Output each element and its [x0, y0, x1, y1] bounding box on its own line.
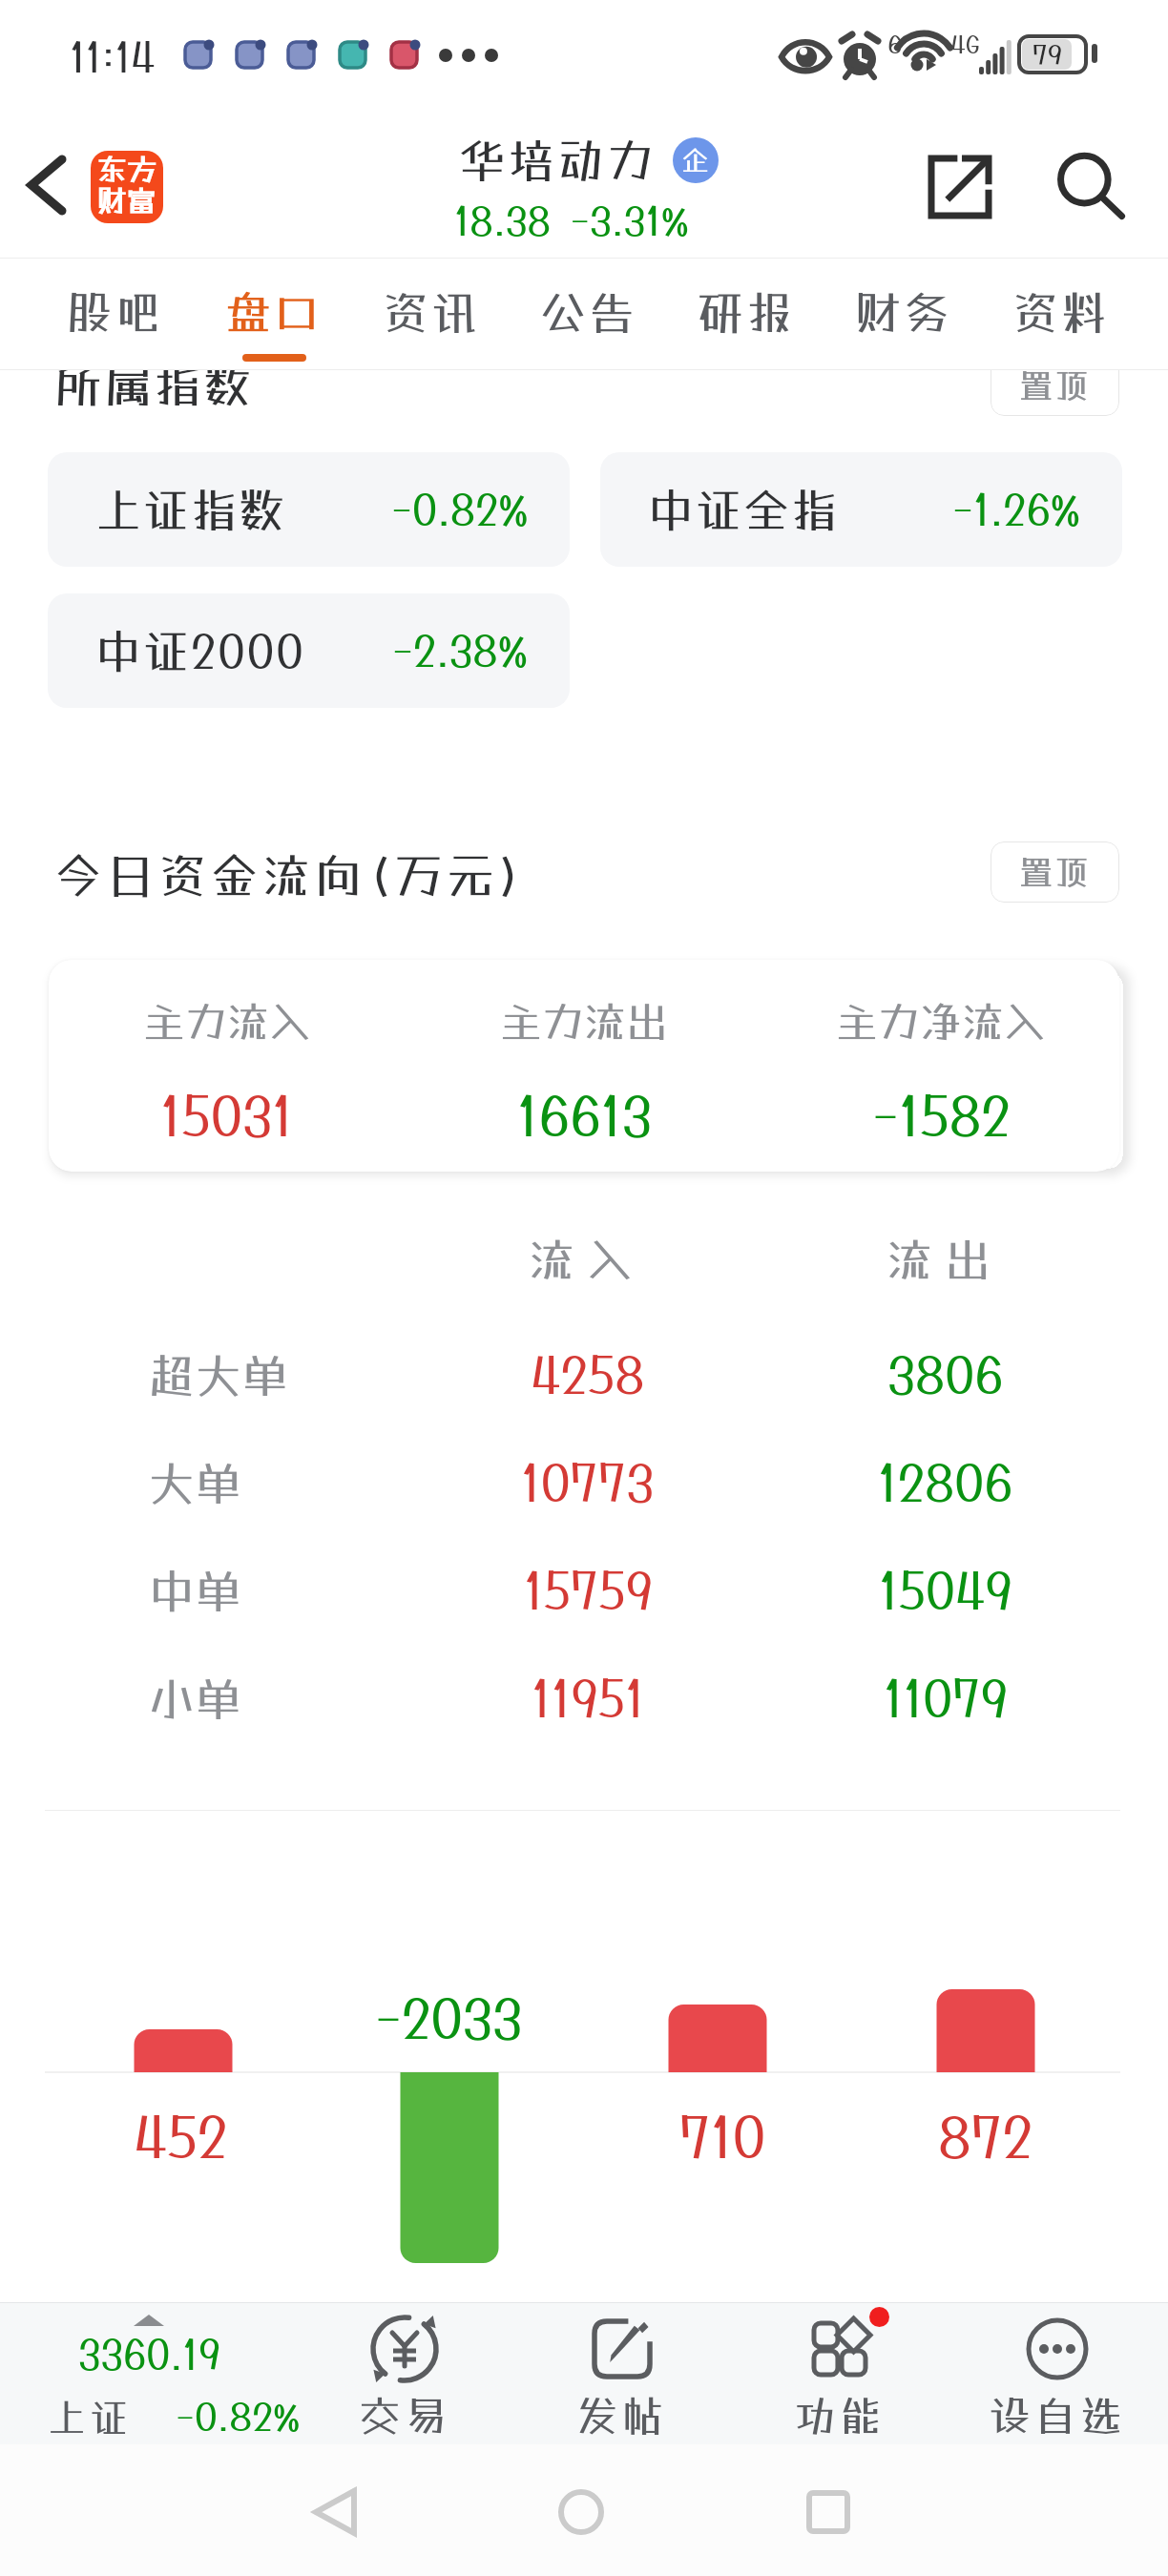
- staticText: 4G: [950, 29, 980, 58]
- staticText: 所属指数: [54, 356, 253, 412]
- staticText: 710: [679, 2104, 766, 2169]
- staticText: 中证2000: [95, 624, 305, 678]
- staticText: 16613: [517, 1084, 652, 1147]
- staticText: 872: [938, 2104, 1033, 2169]
- staticText: 11:14: [70, 33, 156, 81]
- button[interactable]: 置顶: [991, 841, 1119, 903]
- button[interactable]: 功能: [731, 2302, 949, 2444]
- button[interactable]: 资讯: [353, 259, 511, 370]
- button[interactable]: 发帖: [513, 2302, 731, 2444]
- button[interactable]: 财务: [825, 259, 983, 370]
- staticText: 置顶: [1018, 852, 1092, 892]
- staticText: 主力净流入: [836, 997, 1046, 1047]
- staticText: 主力流入: [143, 997, 311, 1047]
- staticText: 盘口: [225, 285, 323, 340]
- staticText: 资料: [1012, 285, 1111, 340]
- staticText: 华培动力: [458, 133, 657, 188]
- staticText: 流出: [886, 1233, 1004, 1287]
- staticText: 小单: [149, 1672, 243, 1726]
- button[interactable]: Back: [312, 2489, 358, 2535]
- staticText: -2.38%: [392, 626, 529, 675]
- staticText: -1582: [872, 1084, 1011, 1147]
- staticText: 主力流出: [500, 997, 668, 1047]
- button[interactable]: Search: [1048, 145, 1134, 231]
- button[interactable]: 中证全指: [600, 452, 1122, 567]
- button[interactable]: 股吧: [36, 259, 195, 370]
- staticText: 79: [1032, 39, 1063, 71]
- staticText: 超大单: [149, 1348, 290, 1402]
- staticText: 4258: [531, 1345, 645, 1403]
- staticText: 大单: [149, 1456, 243, 1510]
- staticText: 3806: [887, 1345, 1004, 1403]
- staticText: 11079: [884, 1669, 1009, 1727]
- button[interactable]: Recents: [807, 2491, 849, 2533]
- staticText: -1.26%: [952, 485, 1081, 534]
- button[interactable]: 研报: [668, 259, 825, 370]
- staticText: 财务: [855, 285, 953, 340]
- button[interactable]: 中证2000: [48, 593, 570, 708]
- button[interactable]: East Money home: [91, 151, 163, 223]
- staticText: 发帖: [576, 2391, 668, 2441]
- staticText: 置顶: [1018, 365, 1092, 405]
- button[interactable]: 上证指数: [48, 452, 570, 567]
- staticText: 15759: [524, 1561, 653, 1619]
- staticText: -2033: [375, 1986, 523, 2049]
- staticText: 企: [681, 144, 710, 177]
- button[interactable]: 公告: [511, 259, 668, 370]
- staticText: 6: [887, 29, 903, 58]
- staticText: 18.38 -3.31%: [454, 197, 689, 243]
- staticText: 15031: [160, 1084, 294, 1147]
- button[interactable]: 盘口: [195, 259, 353, 370]
- staticText: 资讯: [383, 285, 481, 340]
- staticText: 3360.19: [78, 2331, 221, 2379]
- staticText: 12806: [878, 1453, 1013, 1511]
- button[interactable]: 3360.19: [0, 2302, 315, 2444]
- button[interactable]: 置顶: [991, 355, 1119, 416]
- staticText: 设自选: [989, 2391, 1126, 2441]
- staticText: -0.82%: [176, 2394, 301, 2439]
- staticText: 上证: [48, 2395, 132, 2440]
- staticText: -0.82%: [391, 485, 529, 534]
- staticText: 功能: [794, 2391, 886, 2441]
- staticText: 10773: [521, 1453, 655, 1511]
- button[interactable]: Share: [918, 145, 1002, 229]
- button[interactable]: Home: [558, 2489, 604, 2535]
- button[interactable]: 资料: [983, 259, 1140, 370]
- staticText: 公告: [540, 285, 638, 340]
- staticText: 中单: [149, 1564, 243, 1618]
- staticText: 流入: [529, 1233, 646, 1287]
- button[interactable]: 交易: [296, 2302, 513, 2444]
- staticText: 研报: [698, 285, 796, 340]
- staticText: 上证指数: [95, 483, 287, 537]
- staticText: 452: [134, 2104, 228, 2169]
- button[interactable]: 主力流入: [49, 960, 1119, 1172]
- staticText: 东方: [97, 152, 156, 187]
- staticText: 15049: [879, 1561, 1012, 1619]
- staticText: 财富: [97, 183, 156, 218]
- staticText: 股吧: [67, 285, 165, 340]
- button[interactable]: Back: [10, 148, 84, 222]
- staticText: 交易: [359, 2391, 450, 2441]
- staticText: 今日资金流向(万元): [54, 847, 527, 904]
- staticText: 中证全指: [648, 483, 840, 537]
- staticText: 11951: [532, 1669, 645, 1727]
- button[interactable]: 设自选: [949, 2302, 1166, 2444]
